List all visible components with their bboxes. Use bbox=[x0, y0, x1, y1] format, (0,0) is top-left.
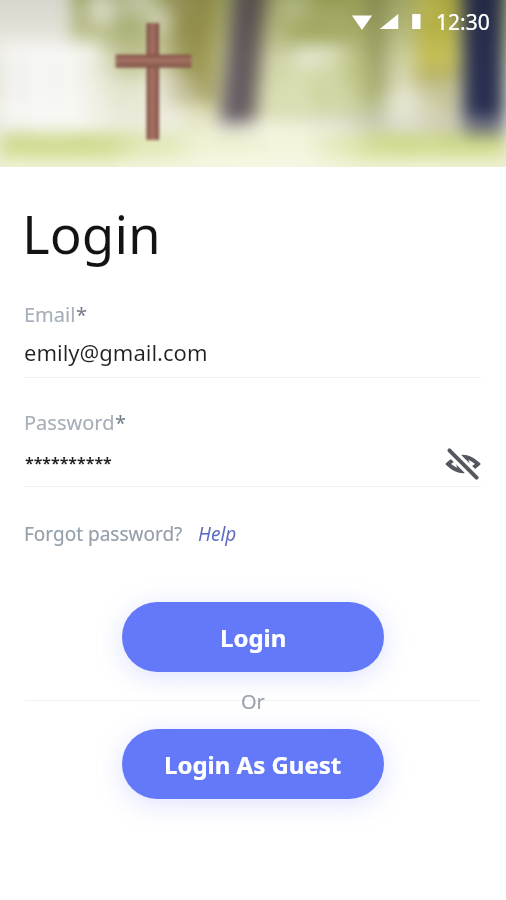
staticText: 12:30 bbox=[436, 8, 490, 37]
staticText: Or bbox=[241, 688, 265, 715]
staticText: Email bbox=[24, 301, 76, 328]
staticText: Help bbox=[198, 521, 237, 547]
button[interactable]: Help bbox=[198, 521, 237, 547]
staticText: Login bbox=[22, 197, 161, 269]
button[interactable]: Login bbox=[122, 602, 384, 672]
button[interactable]: Login As Guest bbox=[122, 729, 384, 799]
staticText: emily@gmail.com bbox=[24, 337, 208, 367]
staticText: * bbox=[115, 409, 127, 436]
staticText: Login As Guest bbox=[164, 748, 342, 781]
staticText: * bbox=[76, 301, 88, 328]
button[interactable]: Show password bbox=[441, 442, 485, 486]
staticText: Login bbox=[220, 621, 287, 654]
staticText: Password bbox=[24, 409, 115, 436]
staticText: Forgot password? bbox=[24, 521, 183, 547]
staticText: ********** bbox=[25, 452, 112, 474]
